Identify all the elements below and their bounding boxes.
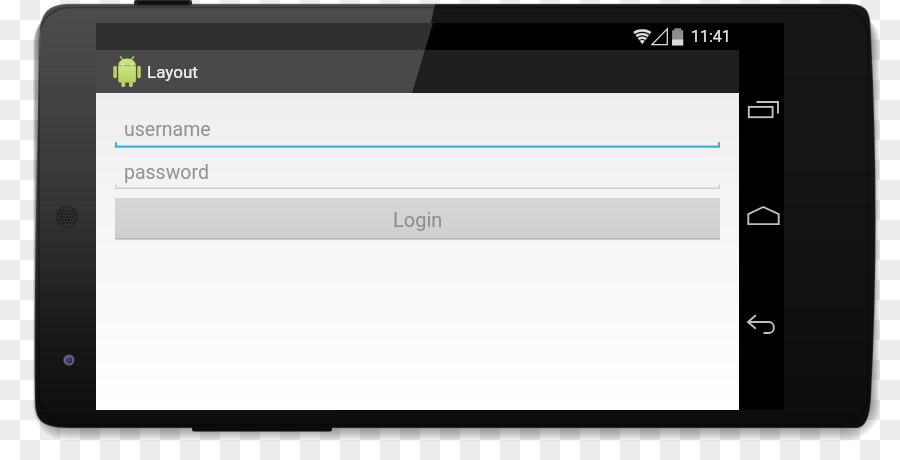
button[interactable]: Clock xyxy=(691,27,731,46)
staticText: 11:41 xyxy=(691,27,731,46)
button[interactable]: Recent apps xyxy=(739,73,784,146)
button[interactable]: password xyxy=(115,157,720,187)
button[interactable]: Login xyxy=(115,199,720,240)
staticText: username xyxy=(124,118,211,141)
button[interactable]: Back xyxy=(739,286,784,359)
button[interactable]: Home xyxy=(739,176,784,249)
staticText: password xyxy=(124,161,209,184)
button[interactable]: username xyxy=(115,114,720,144)
staticText: Layout xyxy=(147,62,198,82)
button[interactable]: Layout xyxy=(147,62,198,82)
staticText: Login xyxy=(393,208,443,231)
